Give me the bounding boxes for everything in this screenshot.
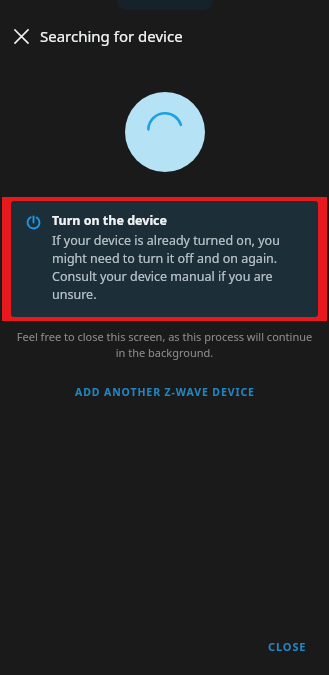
button[interactable]: Close — [6, 21, 36, 51]
button[interactable]: Turn on the device — [11, 201, 318, 317]
button[interactable]: CLOSE — [254, 632, 321, 661]
staticText: Searching for device — [40, 26, 183, 46]
button[interactable]: ADD ANOTHER Z-WAVE DEVICE — [61, 379, 269, 405]
staticText: If your device is already turned on, you… — [52, 232, 304, 303]
staticText: Feel free to close this screen, as this … — [16, 329, 313, 361]
staticText: ADD ANOTHER Z-WAVE DEVICE — [75, 385, 255, 399]
staticText: CLOSE — [268, 639, 307, 654]
staticText: Turn on the device — [52, 212, 168, 229]
